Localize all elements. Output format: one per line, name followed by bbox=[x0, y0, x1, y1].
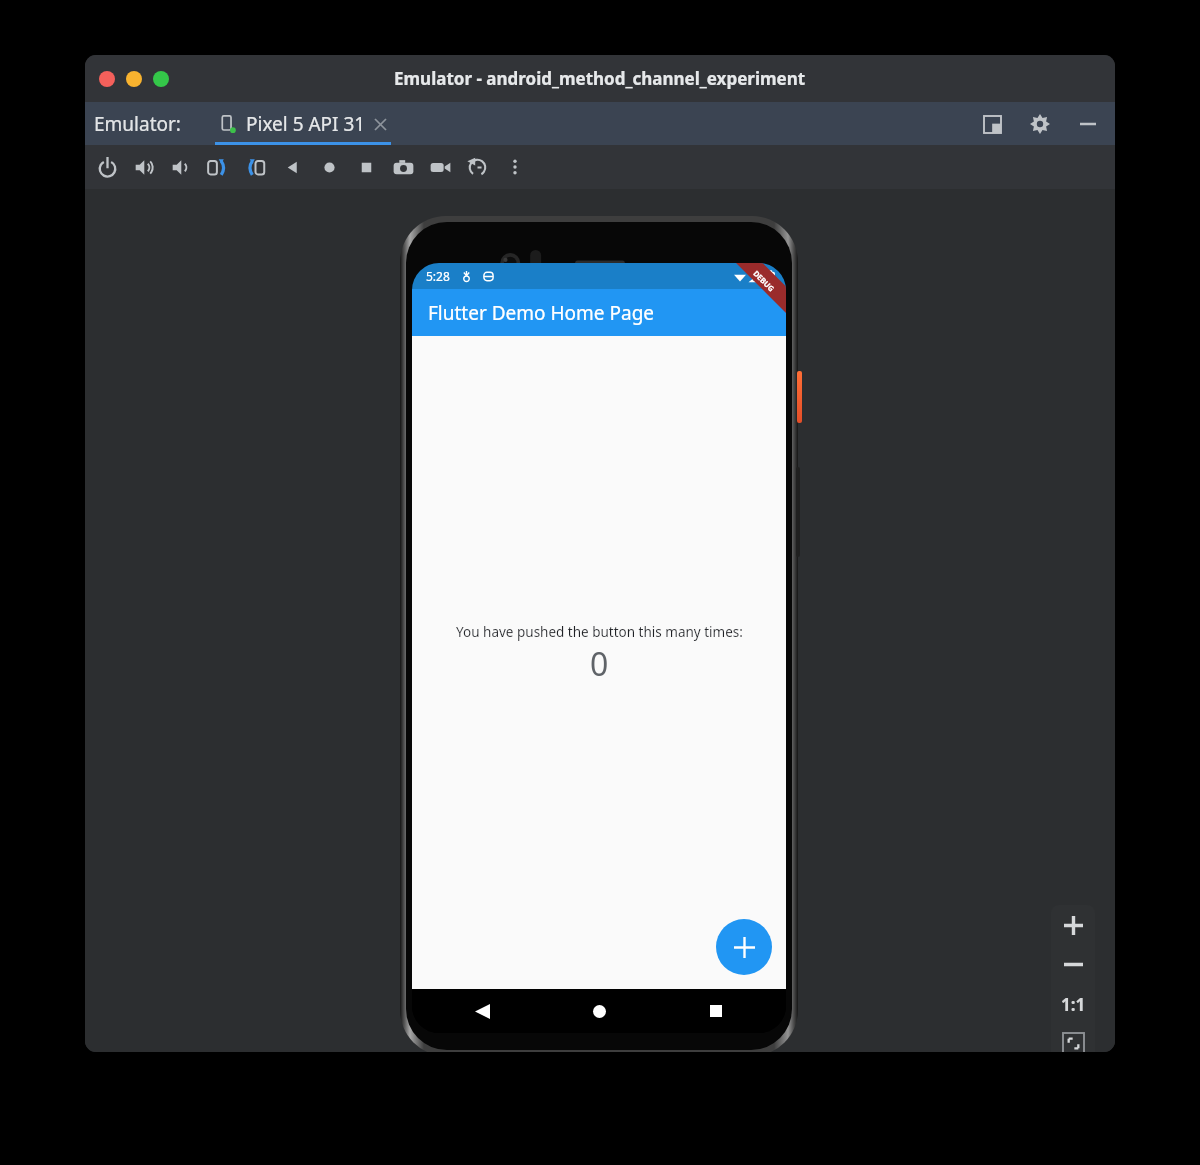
button[interactable]: Increment bbox=[716, 919, 772, 975]
staticText: Flutter Demo Home Page bbox=[428, 300, 655, 326]
button[interactable]: Pixel 5 API 31 bbox=[203, 102, 403, 145]
button[interactable]: Settings bbox=[1026, 110, 1054, 138]
staticText: 0 bbox=[590, 642, 609, 686]
button[interactable]: Home bbox=[581, 993, 617, 1029]
button[interactable]: Overview bbox=[348, 147, 385, 187]
button[interactable]: Volume up bbox=[126, 147, 163, 187]
button[interactable]: Record screen bbox=[422, 147, 459, 187]
button[interactable]: Dock window bbox=[978, 110, 1006, 138]
staticText: Emulator: bbox=[94, 111, 181, 137]
button[interactable]: Close bbox=[99, 71, 115, 87]
button[interactable]: Power bbox=[89, 147, 126, 187]
button[interactable]: Screenshot bbox=[385, 147, 422, 187]
button[interactable]: Back bbox=[274, 147, 311, 187]
button[interactable]: Minimize bbox=[126, 71, 142, 87]
button[interactable]: More bbox=[496, 147, 533, 187]
button[interactable]: Zoom bbox=[153, 71, 169, 87]
staticText: You have pushed the button this many tim… bbox=[456, 623, 743, 641]
staticText: 5:28 bbox=[426, 268, 450, 284]
button[interactable]: Fit to window bbox=[1054, 1024, 1092, 1052]
button[interactable]: Volume down bbox=[163, 147, 200, 187]
staticText: DEBUG bbox=[751, 268, 777, 294]
staticText: Pixel 5 API 31 bbox=[246, 111, 366, 137]
button[interactable]: 1:1 bbox=[1054, 985, 1092, 1023]
button[interactable]: Rotate right bbox=[237, 147, 274, 187]
button[interactable]: Zoom out bbox=[1054, 945, 1092, 983]
button[interactable]: Minimize bbox=[1074, 110, 1102, 138]
staticText: Emulator - android_method_channel_experi… bbox=[394, 67, 806, 90]
button[interactable]: Rotate left bbox=[200, 147, 237, 187]
button[interactable]: Zoom in bbox=[1054, 906, 1092, 944]
button[interactable]: Back bbox=[464, 993, 500, 1029]
button[interactable]: Recent apps bbox=[698, 993, 734, 1029]
button[interactable]: History bbox=[459, 147, 496, 187]
button[interactable]: Home bbox=[311, 147, 348, 187]
staticText: 1:1 bbox=[1061, 993, 1086, 1016]
